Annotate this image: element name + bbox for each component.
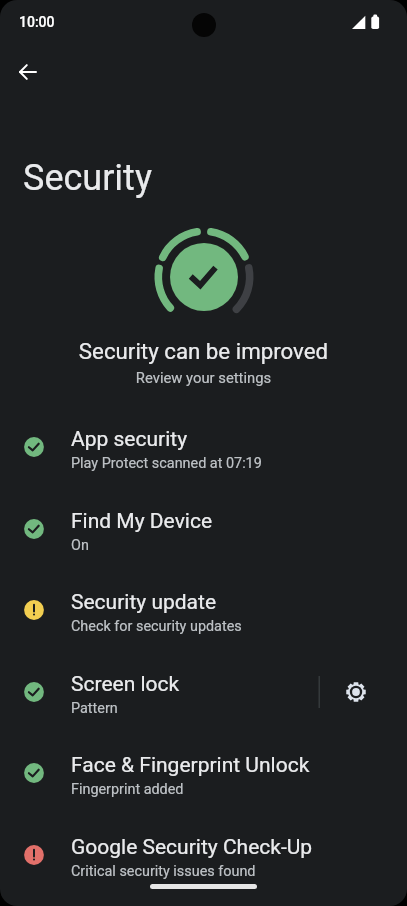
staticText: Play Protect scanned at 07:19 [71, 455, 262, 472]
staticText: Google Security Check-Up [71, 835, 313, 860]
button[interactable]: Find My Device [0, 496, 407, 562]
staticText: Screen lock [71, 672, 180, 697]
button[interactable]: Security update [0, 577, 407, 643]
staticText: Review your settings [0, 369, 407, 386]
staticText: 10:00 [19, 14, 55, 30]
staticText: Security can be improved [0, 338, 407, 364]
staticText: App security [71, 427, 188, 452]
staticText: Security update [71, 590, 217, 615]
button[interactable]: Face & Fingerprint Unlock [0, 740, 407, 806]
staticText: Face & Fingerprint Unlock [71, 753, 310, 778]
button[interactable]: Google Security Check-Up [0, 822, 407, 888]
button[interactable]: Screen lock [0, 659, 407, 725]
button[interactable]: App security [0, 414, 407, 480]
staticText: Fingerprint added [71, 781, 184, 798]
button[interactable]: Screen lock settings [336, 672, 376, 712]
staticText: On [71, 537, 89, 554]
staticText: Pattern [71, 700, 118, 717]
staticText: Check for security updates [71, 618, 242, 635]
staticText: Critical security issues found [71, 863, 256, 880]
staticText: Security [23, 157, 152, 199]
staticText: Find My Device [71, 509, 213, 534]
button[interactable]: Back [10, 54, 46, 90]
